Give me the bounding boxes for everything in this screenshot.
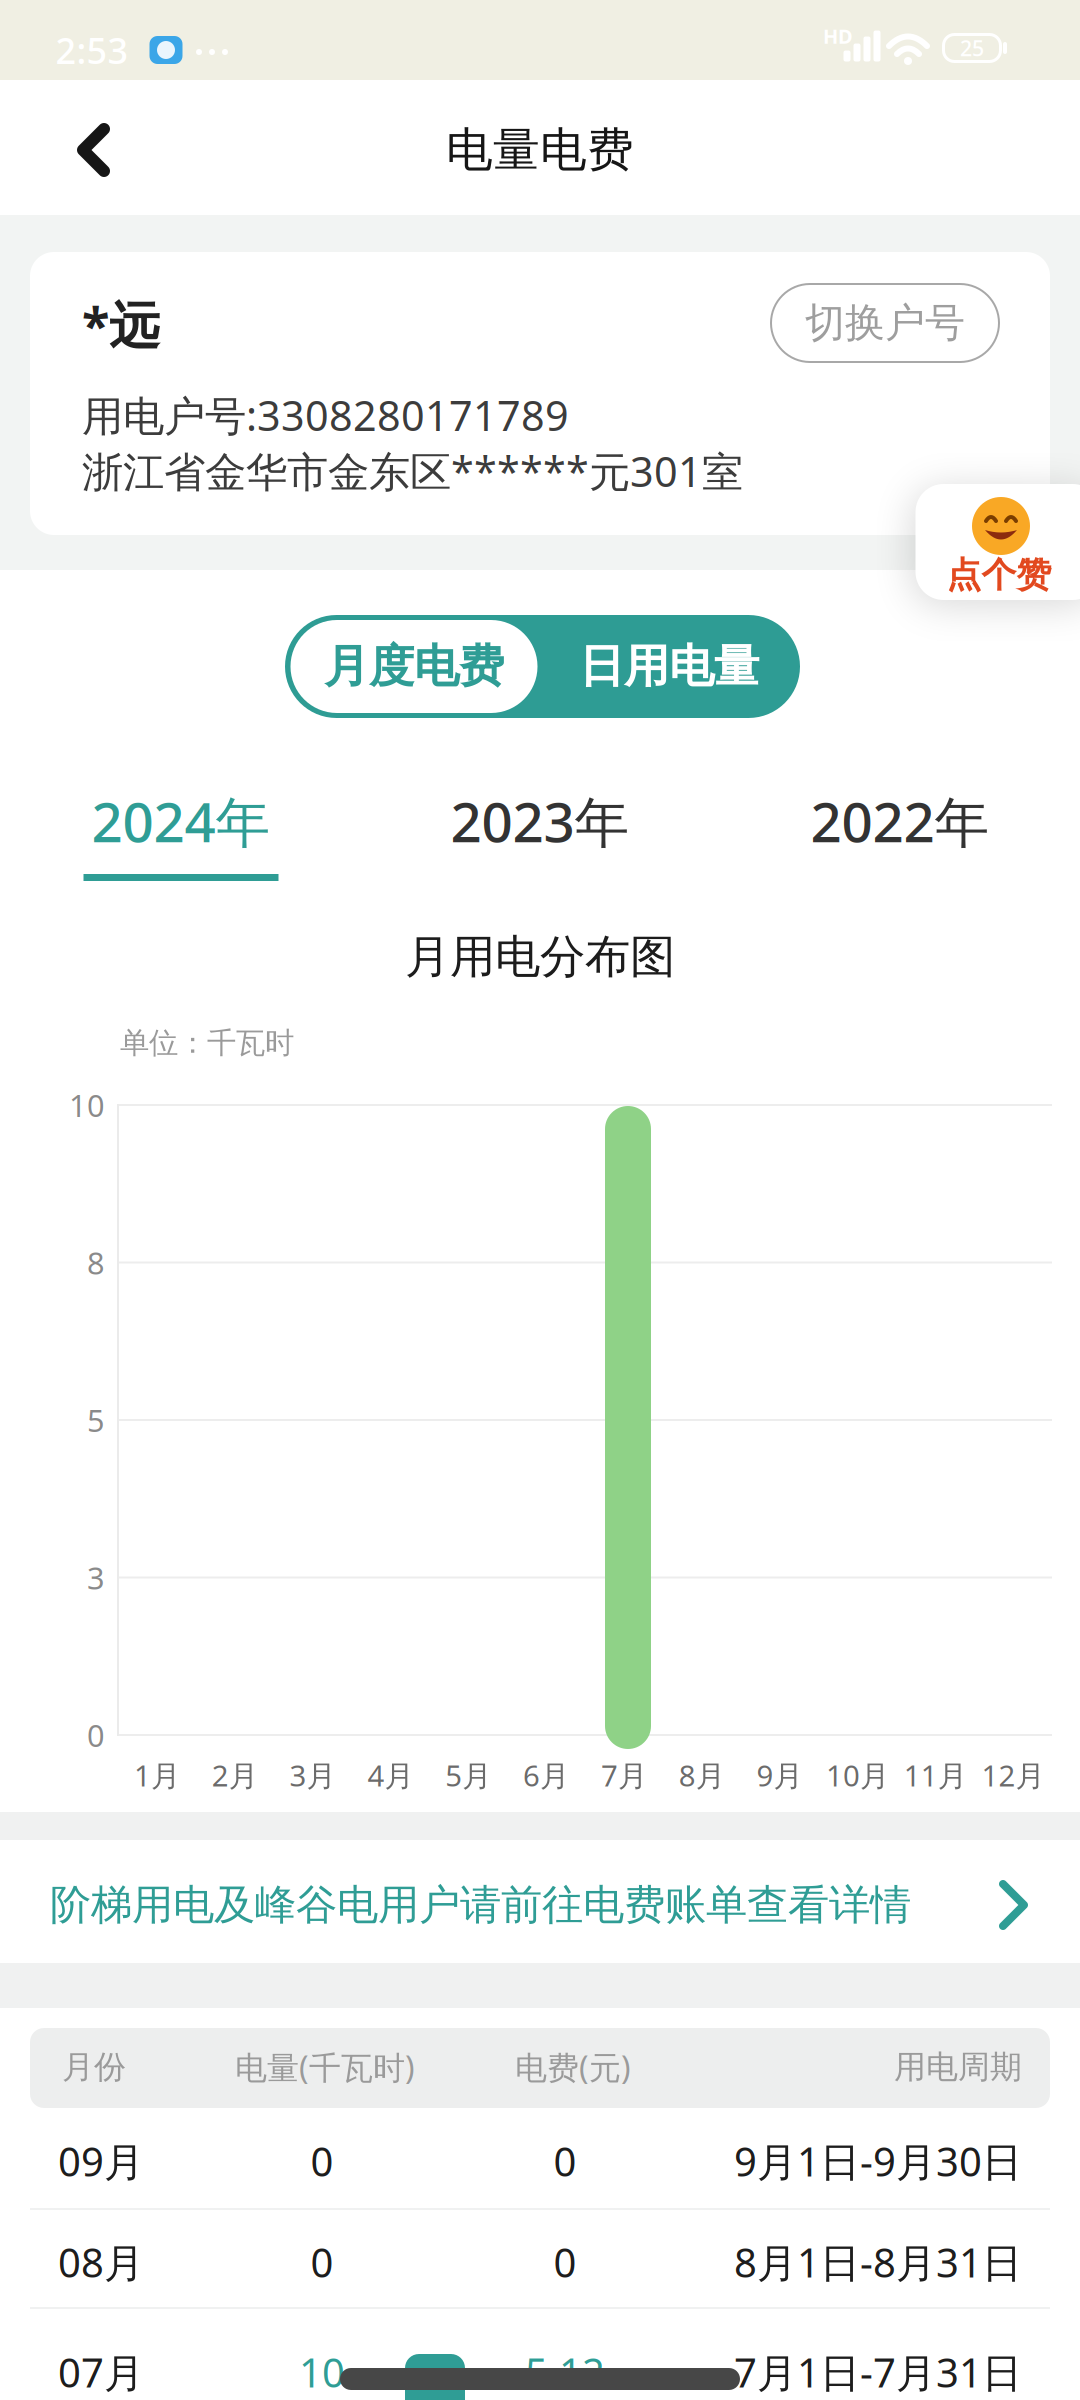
staticText: 8月1日-8月31日 [734,2235,1022,2288]
staticText: 9月1日-9月30日 [734,2134,1022,2187]
staticText: 7月 [601,1755,647,1794]
staticText: 5 [87,1400,105,1440]
button[interactable]: 2024年 [1,766,361,876]
button[interactable]: 切换户号 [770,283,1000,363]
staticText: 5月 [445,1755,491,1794]
staticText: 10 [299,2345,345,2398]
staticText: 8 [87,1242,105,1283]
staticText: 3 [87,1557,105,1598]
staticText: 8月 [679,1755,725,1794]
staticText: 2023年 [450,785,629,857]
staticText: 浙江省金华市金东区******元301室 [82,444,743,498]
staticText: 1月 [134,1755,180,1794]
button[interactable]: Back [76,123,112,177]
staticText: 电量电费 [446,121,634,179]
button[interactable]: 2022年 [720,766,1080,876]
staticText: 08月 [58,2235,144,2288]
staticText: 点个赞 [946,554,1051,596]
staticText: 10月 [826,1755,889,1794]
staticText: 用电周期 [894,2047,1022,2087]
staticText: 9月 [757,1755,803,1794]
staticText: 09月 [58,2134,144,2187]
staticText: 3月 [290,1755,336,1794]
staticText: 电量(千瓦时) [235,2046,415,2088]
staticText: HD [823,23,853,49]
staticText: 25 [960,34,984,62]
staticText: 7月1日-7月31日 [734,2345,1022,2398]
button[interactable]: 2023年 [360,766,720,876]
staticText: 月份 [62,2047,126,2087]
staticText: 月度电费 [324,639,504,694]
staticText: 0 [553,2134,576,2187]
staticText: 单位：千瓦时 [120,1025,294,1061]
staticText: 月用电分布图 [405,929,675,985]
staticText: *远 [82,290,160,358]
button[interactable]: 月度电费 [286,615,541,718]
staticText: 日用电量 [579,639,759,694]
staticText: 5.12 [525,2345,605,2398]
staticText: 阶梯用电及峰谷电用户请前往电费账单查看详情 [50,1880,911,1930]
staticText: 电费(元) [515,2046,631,2088]
button[interactable]: 日用电量 [544,615,794,718]
staticText: 6月 [523,1755,569,1794]
staticText: 10 [69,1085,105,1125]
button[interactable]: 阶梯用电及峰谷电用户请前往电费账单查看详情 [0,1841,1080,1963]
staticText: 2024年 [91,785,270,857]
staticText: 2月 [212,1755,258,1794]
staticText: 12月 [982,1755,1045,1794]
button[interactable]: 点个赞 [915,484,1080,600]
staticText: 0 [310,2134,333,2187]
staticText: 4月 [367,1755,413,1794]
staticText: 07月 [58,2345,144,2398]
staticText: 0 [87,1715,105,1755]
staticText: 11月 [904,1755,967,1794]
staticText: 0 [310,2235,333,2288]
staticText: 0 [553,2235,576,2288]
staticText: 用电户号:3308280171789 [82,388,569,442]
staticText: 2:53 [55,26,128,74]
staticText: 切换户号 [805,298,965,347]
staticText: 2022年 [810,785,989,857]
